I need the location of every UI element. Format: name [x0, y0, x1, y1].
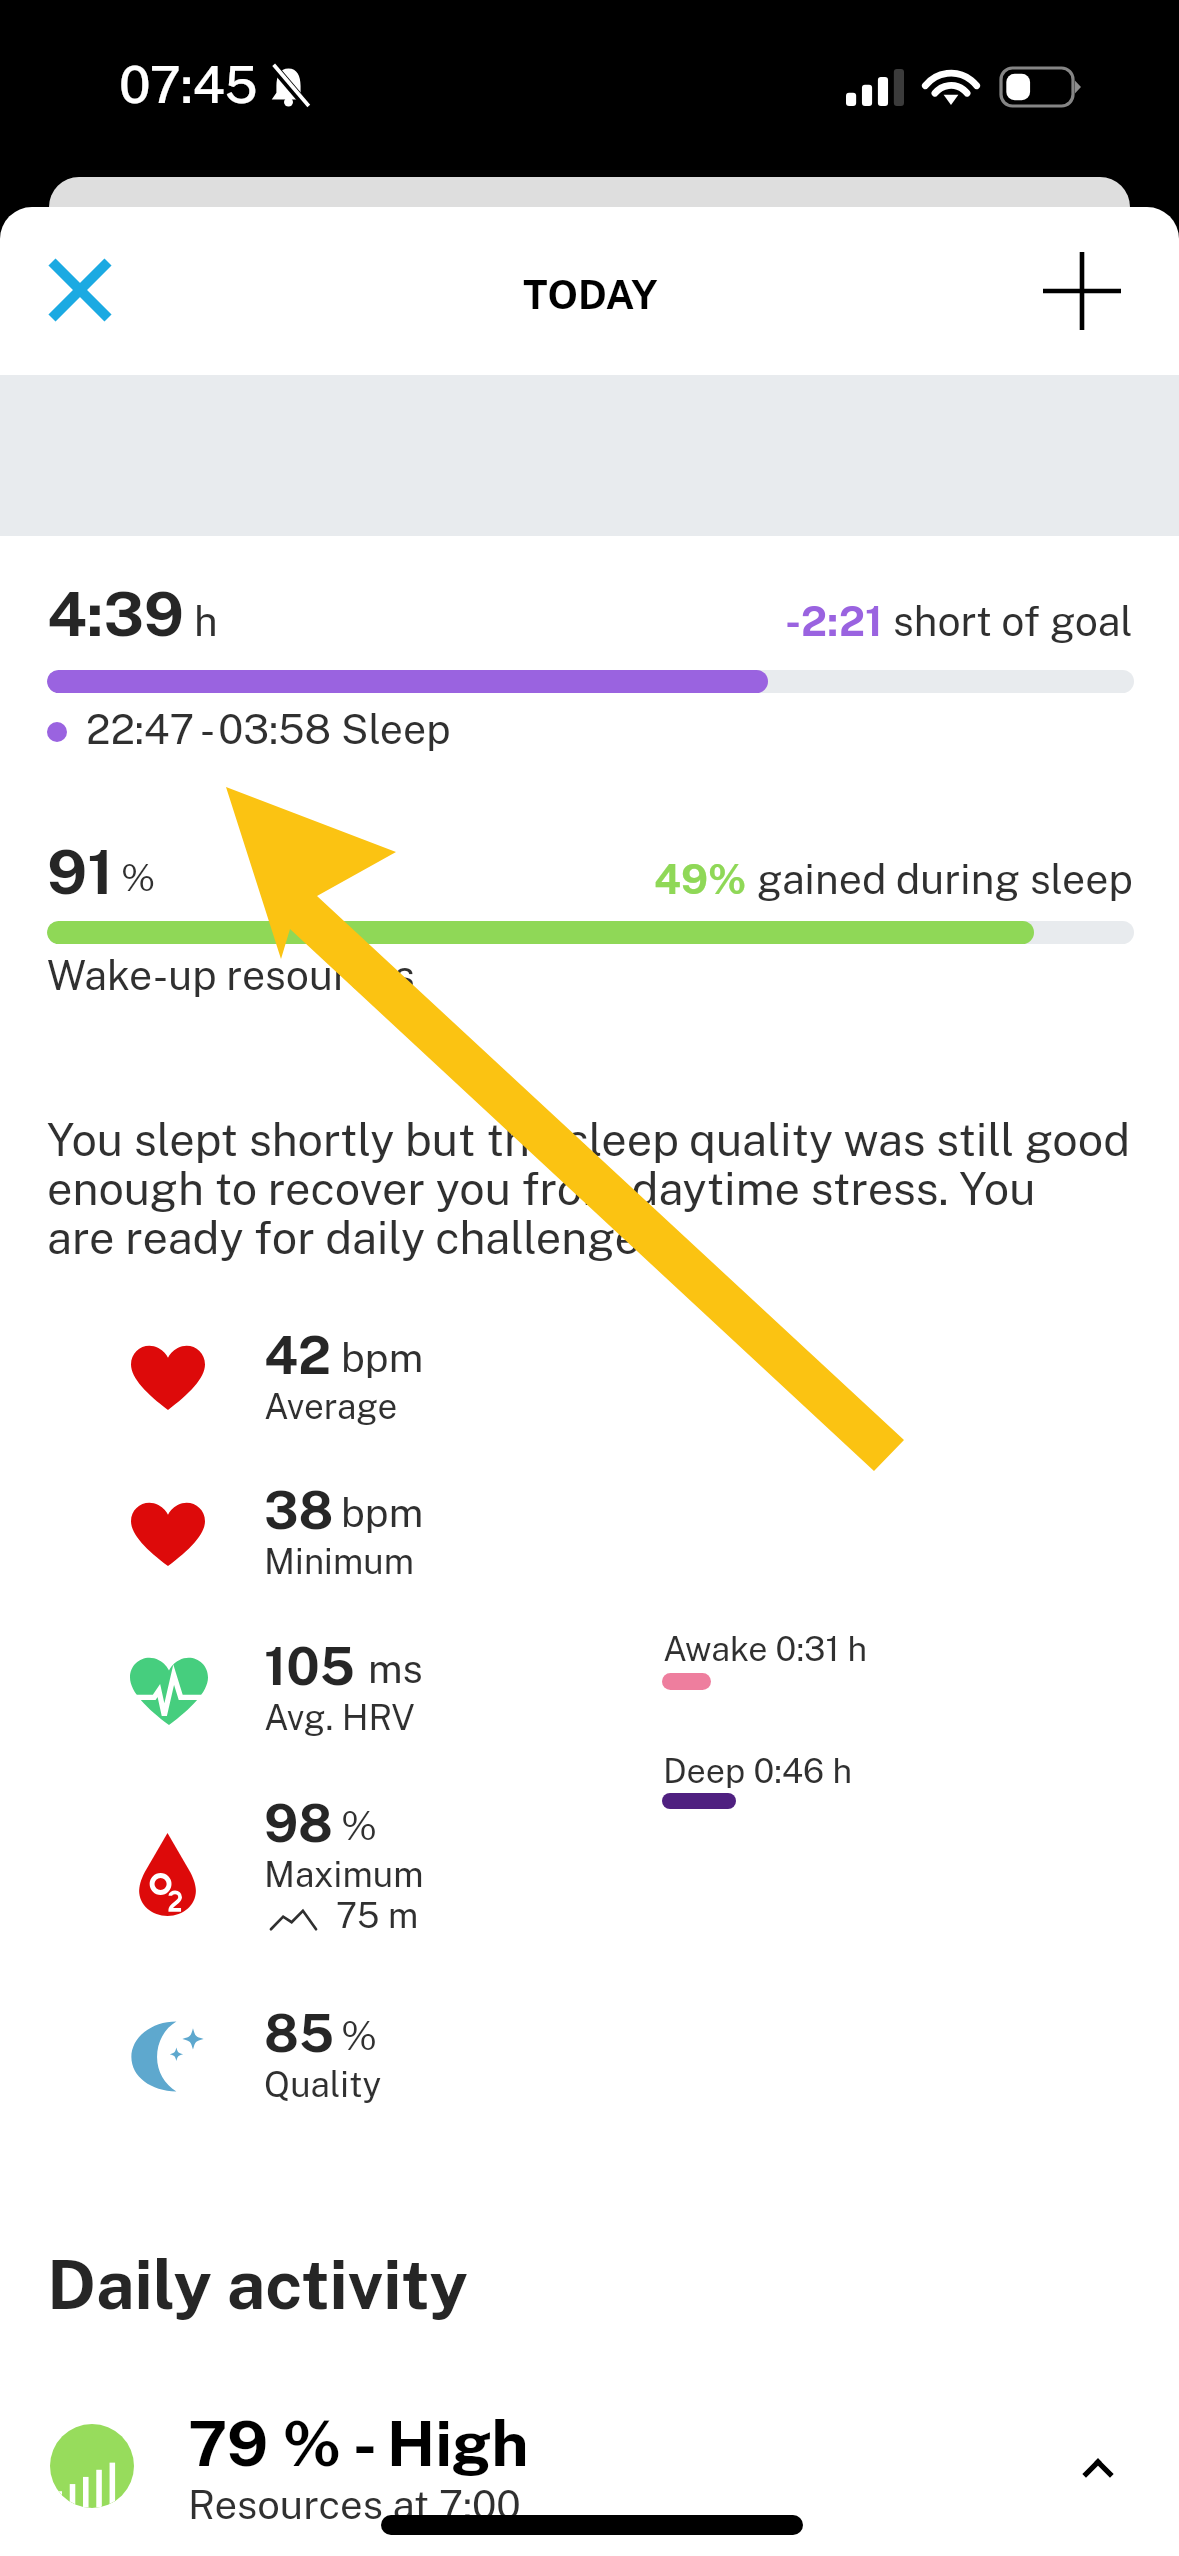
staticText: Average — [264, 1386, 398, 1427]
staticText: 49% — [654, 855, 747, 903]
staticText: 42 — [264, 1325, 332, 1386]
staticText: Deep 0:46 h — [663, 1751, 853, 1791]
staticText: bpm — [341, 1334, 424, 1381]
staticText: 91 — [47, 836, 114, 908]
staticText: Daily activity — [47, 2244, 468, 2324]
staticText: 22:47 - 03:58 Sleep — [86, 705, 451, 753]
staticText: 38 — [264, 1480, 334, 1541]
staticText: 07:45 — [119, 55, 258, 115]
staticText: -2:21 — [785, 597, 883, 645]
staticText: Minimum — [264, 1541, 415, 1582]
staticText: ms — [368, 1645, 423, 1692]
staticText: % — [121, 855, 156, 900]
staticText: 105 — [264, 1636, 355, 1697]
staticText: % — [341, 1802, 378, 1849]
staticText: 4:39 — [47, 578, 185, 650]
staticText: 98 — [264, 1793, 333, 1854]
staticText: 85 — [264, 2003, 334, 2064]
staticText: Resources at 7:00 — [188, 2481, 521, 2528]
staticText: TODAY — [523, 271, 658, 318]
staticText: h — [194, 597, 218, 645]
staticText: % — [341, 2012, 378, 2059]
staticText: Maximum — [264, 1854, 424, 1895]
staticText: 75 m — [336, 1895, 419, 1936]
staticText: Quality — [264, 2064, 382, 2105]
button[interactable]: Close — [30, 240, 130, 340]
staticText: gained during sleep — [757, 855, 1133, 903]
staticText: Wake-up resources — [47, 951, 415, 999]
staticText: short of goal — [893, 597, 1133, 645]
button[interactable]: Add — [1032, 241, 1132, 341]
button[interactable]: Collapse — [1043, 2414, 1153, 2522]
staticText: 79 % - High — [188, 2406, 529, 2480]
staticText: bpm — [341, 1489, 424, 1536]
staticText: Avg. HRV — [264, 1697, 415, 1738]
button[interactable]: 79 % - High — [0, 2400, 1179, 2535]
staticText: You slept shortly but the sleep quality … — [47, 1113, 1131, 1264]
staticText: Awake 0:31 h — [663, 1629, 868, 1669]
